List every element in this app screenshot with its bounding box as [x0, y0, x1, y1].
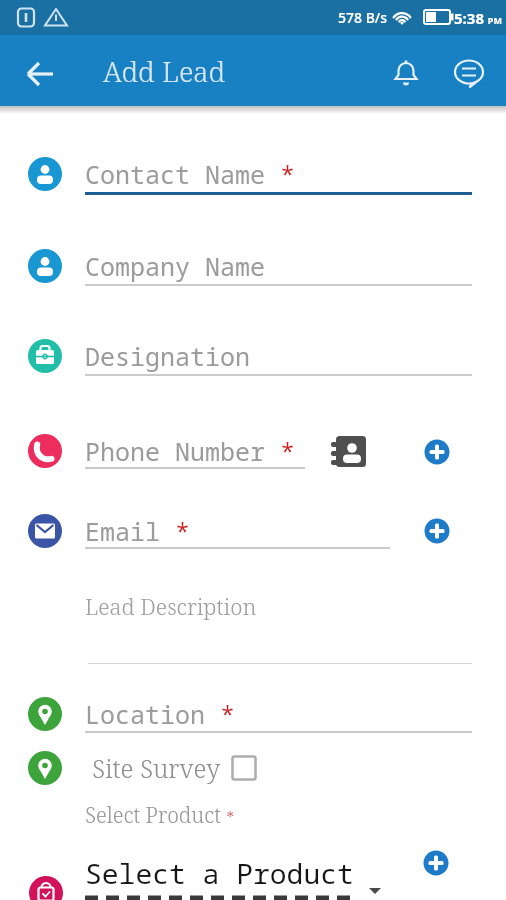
button[interactable]	[424, 439, 450, 465]
button[interactable]: Designation	[85, 334, 445, 378]
staticText: Site Survey	[92, 751, 221, 785]
staticText: Lead Description	[85, 591, 257, 621]
button[interactable]	[28, 339, 62, 373]
staticText: Phone Number *	[85, 434, 296, 468]
staticText: Add Lead	[103, 52, 226, 90]
button[interactable]	[28, 514, 62, 548]
button[interactable]: Company Name	[85, 244, 445, 288]
staticText: Select a Product	[85, 854, 354, 892]
button[interactable]	[22, 56, 58, 92]
staticText: Company Name	[85, 249, 266, 283]
staticText: Location *	[85, 697, 236, 731]
button[interactable]	[29, 876, 63, 900]
button[interactable]: Phone Number *	[85, 429, 445, 473]
staticText: 5:38 PM	[454, 8, 502, 28]
staticText: Email *	[85, 514, 191, 548]
staticText: 578 B/s	[338, 8, 388, 27]
button[interactable]	[331, 436, 367, 468]
button[interactable]	[424, 518, 450, 544]
button[interactable]	[28, 157, 62, 191]
button[interactable]	[28, 697, 62, 731]
button[interactable]: Email *	[85, 509, 445, 553]
button[interactable]	[28, 751, 62, 785]
staticText: Contact Name *	[85, 157, 296, 191]
button[interactable]: Contact Name *	[85, 152, 445, 196]
button[interactable]: Select a Product	[85, 852, 375, 894]
button[interactable]: Location *	[85, 692, 445, 736]
button[interactable]	[452, 58, 486, 92]
button[interactable]	[231, 755, 257, 781]
staticText: Select Product *	[85, 801, 234, 830]
button[interactable]	[28, 249, 62, 283]
button[interactable]	[390, 58, 422, 90]
button[interactable]: Site Survey	[92, 746, 232, 790]
button[interactable]	[28, 434, 62, 468]
button[interactable]	[423, 850, 449, 876]
staticText: Designation	[85, 339, 251, 373]
